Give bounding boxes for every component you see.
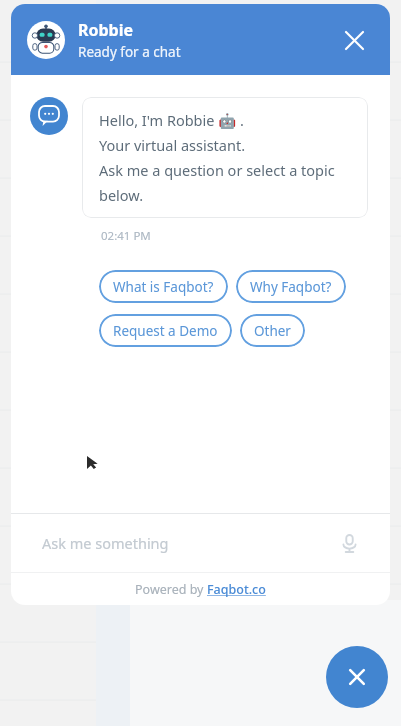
- staticText: Ask me something: [42, 533, 334, 553]
- staticText: below.: [99, 185, 144, 205]
- button[interactable]: Voice input: [334, 528, 364, 558]
- staticText: 02:41 PM: [101, 228, 151, 244]
- button[interactable]: Faqbot.co: [207, 581, 266, 598]
- button[interactable]: Close: [334, 20, 374, 60]
- staticText: Ask me a question or select a topic: [99, 160, 335, 180]
- staticText: Powered by: [135, 581, 207, 598]
- button[interactable]: Why Faqbot?: [236, 270, 346, 303]
- staticText: What is Faqbot?: [113, 278, 214, 296]
- staticText: Request a Demo: [113, 322, 218, 340]
- staticText: Faqbot.co: [207, 581, 266, 598]
- button[interactable]: Other: [240, 314, 305, 347]
- staticText: Robbie: [78, 19, 134, 41]
- staticText: Ready for a chat: [78, 43, 181, 61]
- staticText: Why Faqbot?: [250, 278, 332, 296]
- button[interactable]: What is Faqbot?: [99, 270, 228, 303]
- staticText: Hello, I'm Robbie 🤖 .: [99, 110, 244, 130]
- button[interactable]: Close chat: [326, 646, 388, 708]
- staticText: Other: [254, 322, 291, 340]
- button[interactable]: Request a Demo: [99, 314, 232, 347]
- button[interactable]: Ask me something: [11, 514, 390, 572]
- staticText: Your virtual assistant.: [99, 135, 246, 155]
